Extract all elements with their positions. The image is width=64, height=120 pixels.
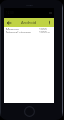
staticText: 1000 g <box>39 30 50 33</box>
staticText: Internal storage <box>6 30 31 33</box>
button[interactable]: More options <box>46 19 53 26</box>
staticText: 1000 <box>39 27 47 30</box>
staticText: Memory <box>6 27 19 30</box>
button[interactable]: Memory <box>4 27 54 30</box>
button[interactable]: Navigate up <box>5 19 12 26</box>
staticText: Android <box>21 20 37 25</box>
button[interactable]: Internal storage <box>4 30 54 33</box>
